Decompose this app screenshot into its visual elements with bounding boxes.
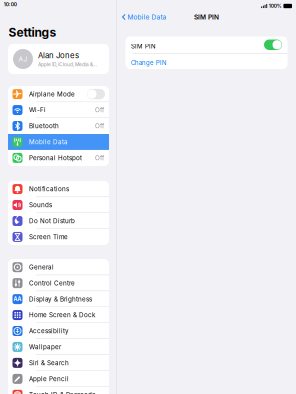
staticText: Touch ID & Passcode [29, 391, 96, 394]
staticText: Airplane Mode [29, 90, 75, 98]
button[interactable]: Wi-Fi [8, 102, 109, 118]
button[interactable]: Mobile Data [117, 10, 167, 24]
button[interactable]: Siri & Search [8, 355, 109, 371]
staticText: Alan Jones [38, 51, 79, 60]
staticText: 100% [269, 3, 282, 9]
button[interactable]: Accessibility [8, 323, 109, 339]
button[interactable]: Apple Pencil [8, 371, 109, 387]
button[interactable]: Bluetooth [8, 118, 109, 134]
button[interactable]: Sounds [8, 197, 109, 213]
staticText: Apple ID, iCloud, Media &… [38, 61, 97, 67]
button[interactable]: Mobile Data [8, 134, 109, 150]
staticText: AJ [18, 55, 27, 63]
staticText: Personal Hotspot [29, 154, 82, 162]
staticText: Sounds [29, 201, 52, 209]
staticText: Change PIN [131, 59, 167, 66]
staticText: Mobile Data [128, 13, 167, 21]
staticText: Wi-Fi [29, 106, 46, 114]
staticText: Display & Brightness [29, 295, 92, 303]
button[interactable]: Control Centre [8, 275, 109, 291]
button[interactable]: Personal Hotspot [8, 150, 109, 166]
staticText: Bluetooth [29, 122, 59, 130]
button[interactable]: Do Not Disturb [8, 213, 109, 229]
staticText: Control Centre [29, 279, 75, 287]
button[interactable]: Wallpaper [8, 339, 109, 355]
button[interactable]: Notifications [8, 181, 109, 197]
staticText: Accessibility [29, 327, 69, 335]
staticText: Home Screen & Dock [29, 311, 95, 319]
staticText: Off [95, 154, 104, 162]
staticText: Screen Time [29, 233, 68, 241]
staticText: Off [95, 106, 104, 114]
button[interactable]: General [8, 259, 109, 275]
button[interactable]: Change PIN [125, 53, 287, 69]
button[interactable]: AA [8, 291, 109, 307]
staticText: Off [95, 122, 104, 130]
staticText: Settings [8, 25, 56, 39]
staticText: Wallpaper [29, 343, 61, 351]
staticText: Mobile Data [29, 138, 68, 146]
staticText: AA [13, 296, 21, 302]
button[interactable]: Touch ID & Passcode [8, 387, 109, 394]
staticText: SIM PIN [194, 13, 219, 21]
button[interactable]: Screen Time [8, 229, 109, 245]
staticText: Notifications [29, 185, 69, 193]
button[interactable]: AJ [8, 44, 109, 74]
staticText: Apple Pencil [29, 375, 69, 383]
button[interactable]: Airplane Mode [8, 86, 109, 102]
staticText: SIM PIN [131, 43, 156, 50]
button[interactable]: Home Screen & Dock [8, 307, 109, 323]
button[interactable]: SIM PIN [125, 36, 287, 53]
staticText: Siri & Search [29, 359, 69, 367]
staticText: 10:00 [4, 1, 17, 7]
staticText: Do Not Disturb [29, 217, 75, 225]
staticText: General [29, 263, 54, 271]
